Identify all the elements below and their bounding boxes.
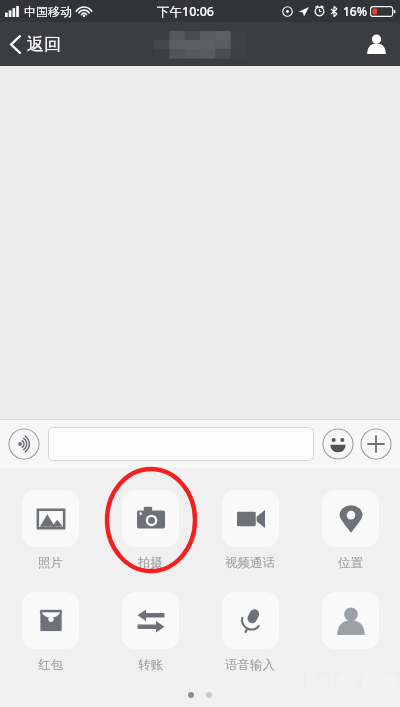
button[interactable]: 位置 (300, 490, 400, 571)
button[interactable]: 红包 (0, 592, 100, 673)
staticText: 视频通话 (225, 555, 275, 571)
staticText: 红包 (38, 657, 63, 673)
button[interactable]: Emoji (322, 428, 354, 460)
button[interactable]: Voice message (8, 428, 40, 460)
button[interactable]: 转账 (100, 592, 200, 673)
button[interactable]: 拍摄 (100, 490, 200, 571)
staticText: 中国移动 (24, 4, 72, 19)
staticText: 转账 (138, 657, 163, 673)
staticText: 拍摄 (138, 555, 163, 571)
button[interactable]: Contact info (353, 23, 400, 65)
button[interactable] (48, 427, 314, 461)
staticText: 下午10:06 (157, 3, 215, 20)
button[interactable] (300, 592, 400, 674)
staticText: 返回 (27, 34, 61, 55)
button[interactable]: 语音输入 (200, 592, 300, 673)
staticText: 16% (343, 3, 367, 19)
button[interactable]: 照片 (0, 490, 100, 571)
button[interactable]: More options (360, 428, 392, 460)
staticText: 语音输入 (225, 657, 275, 673)
button[interactable]: 视频通话 (200, 490, 300, 571)
button[interactable]: 返回 (0, 26, 75, 63)
staticText: 位置 (338, 555, 363, 571)
staticText: 照片 (38, 555, 63, 571)
